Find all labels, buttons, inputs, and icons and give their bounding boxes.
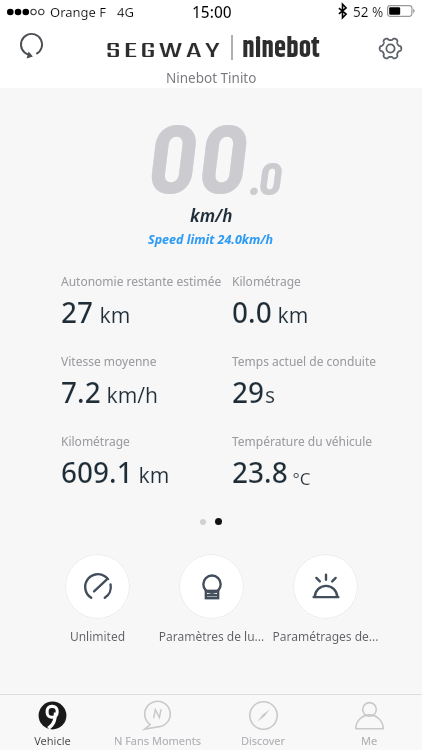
- staticText: 609.1: [61, 453, 133, 491]
- staticText: km/h: [101, 381, 159, 410]
- staticText: Paramètres de lu...: [157, 628, 266, 644]
- staticText: km: [94, 301, 131, 330]
- staticText: Kilométrage: [232, 273, 301, 289]
- staticText: 23.8: [232, 453, 288, 491]
- button[interactable]: Paramètres de lu...: [157, 554, 266, 619]
- staticText: ninebot: [242, 28, 320, 70]
- staticText: Unlimited: [43, 628, 152, 644]
- staticText: s: [265, 381, 276, 410]
- staticText: .0: [249, 149, 282, 204]
- staticText: Discover: [210, 733, 316, 748]
- staticText: 0.0: [232, 293, 272, 331]
- staticText: 27: [61, 293, 94, 331]
- staticText: 15:00: [192, 1, 232, 22]
- staticText: Orange F: [50, 3, 107, 21]
- staticText: Temps actuel de conduite: [232, 353, 376, 369]
- staticText: Température du véhicule: [232, 433, 373, 449]
- staticText: Vehicle: [0, 733, 105, 748]
- button[interactable]: N Fans Moments: [105, 695, 210, 748]
- button[interactable]: Refresh: [14, 27, 49, 62]
- staticText: km/h: [190, 204, 233, 227]
- button[interactable]: Me: [316, 695, 422, 748]
- staticText: 4G: [117, 3, 134, 21]
- button[interactable]: Vehicle: [0, 695, 105, 748]
- staticText: Kilométrage: [61, 433, 130, 449]
- staticText: °C: [288, 467, 311, 490]
- staticText: km: [133, 461, 170, 490]
- staticText: 7.2: [61, 373, 101, 411]
- button[interactable]: Discover: [210, 695, 316, 748]
- staticText: N Fans Moments: [105, 733, 210, 748]
- staticText: Paramétrages de...: [271, 628, 380, 644]
- button[interactable]: Paramétrages de...: [271, 554, 380, 619]
- staticText: Speed limit 24.0km/h: [148, 231, 274, 248]
- staticText: 29: [232, 373, 265, 411]
- staticText: Autonomie restante estimée: [61, 273, 222, 289]
- staticText: Vitesse moyenne: [61, 353, 157, 369]
- button[interactable]: Settings: [370, 28, 410, 68]
- staticText: Ninebot Tinito: [166, 69, 257, 87]
- staticText: SEGWAY: [106, 34, 224, 64]
- button[interactable]: Unlimited: [43, 554, 152, 619]
- staticText: 52 %: [353, 3, 384, 21]
- staticText: 00: [148, 98, 250, 212]
- staticText: Me: [316, 733, 422, 748]
- staticText: km: [272, 301, 309, 330]
